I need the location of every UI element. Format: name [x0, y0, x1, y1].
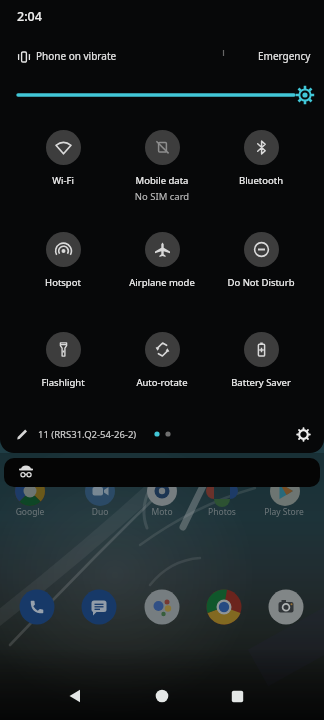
staticText: Google — [0, 506, 65, 518]
staticText: Photos — [187, 506, 257, 518]
staticText: Bluetooth — [206, 174, 316, 187]
button[interactable] — [244, 232, 279, 267]
staticText: Auto-rotate — [107, 376, 217, 389]
staticText: Phone on vibrate — [36, 49, 117, 63]
staticText: Hotspot — [8, 276, 118, 289]
button[interactable] — [145, 232, 180, 267]
button[interactable]: Phone on vibrate — [10, 44, 324, 70]
button[interactable] — [145, 130, 180, 165]
button[interactable] — [244, 130, 279, 165]
staticText: 11 (RRS31.Q2-54-26-2) — [38, 428, 137, 441]
button[interactable] — [15, 427, 29, 441]
button[interactable]: Emergency — [258, 49, 311, 63]
button[interactable] — [46, 130, 81, 165]
staticText: Flashlight — [8, 376, 118, 389]
staticText: No SIM card — [107, 190, 217, 203]
staticText: Play Store — [249, 506, 319, 518]
button[interactable] — [244, 332, 279, 367]
staticText: 2:04 — [17, 8, 42, 25]
button[interactable] — [46, 232, 81, 267]
button[interactable] — [60, 681, 90, 711]
button[interactable] — [147, 681, 177, 711]
staticText: Moto — [127, 506, 197, 518]
button[interactable] — [4, 458, 320, 487]
staticText: Battery Saver — [206, 376, 316, 389]
button[interactable] — [145, 332, 180, 367]
button[interactable] — [222, 681, 252, 711]
staticText: Mobile data — [107, 174, 217, 187]
staticText: Airplane mode — [107, 276, 217, 289]
button[interactable] — [293, 424, 313, 444]
staticText: Wi-Fi — [8, 174, 118, 187]
staticText: Duo — [65, 506, 135, 518]
button[interactable] — [46, 332, 81, 367]
staticText: Do Not Disturb — [206, 276, 316, 289]
